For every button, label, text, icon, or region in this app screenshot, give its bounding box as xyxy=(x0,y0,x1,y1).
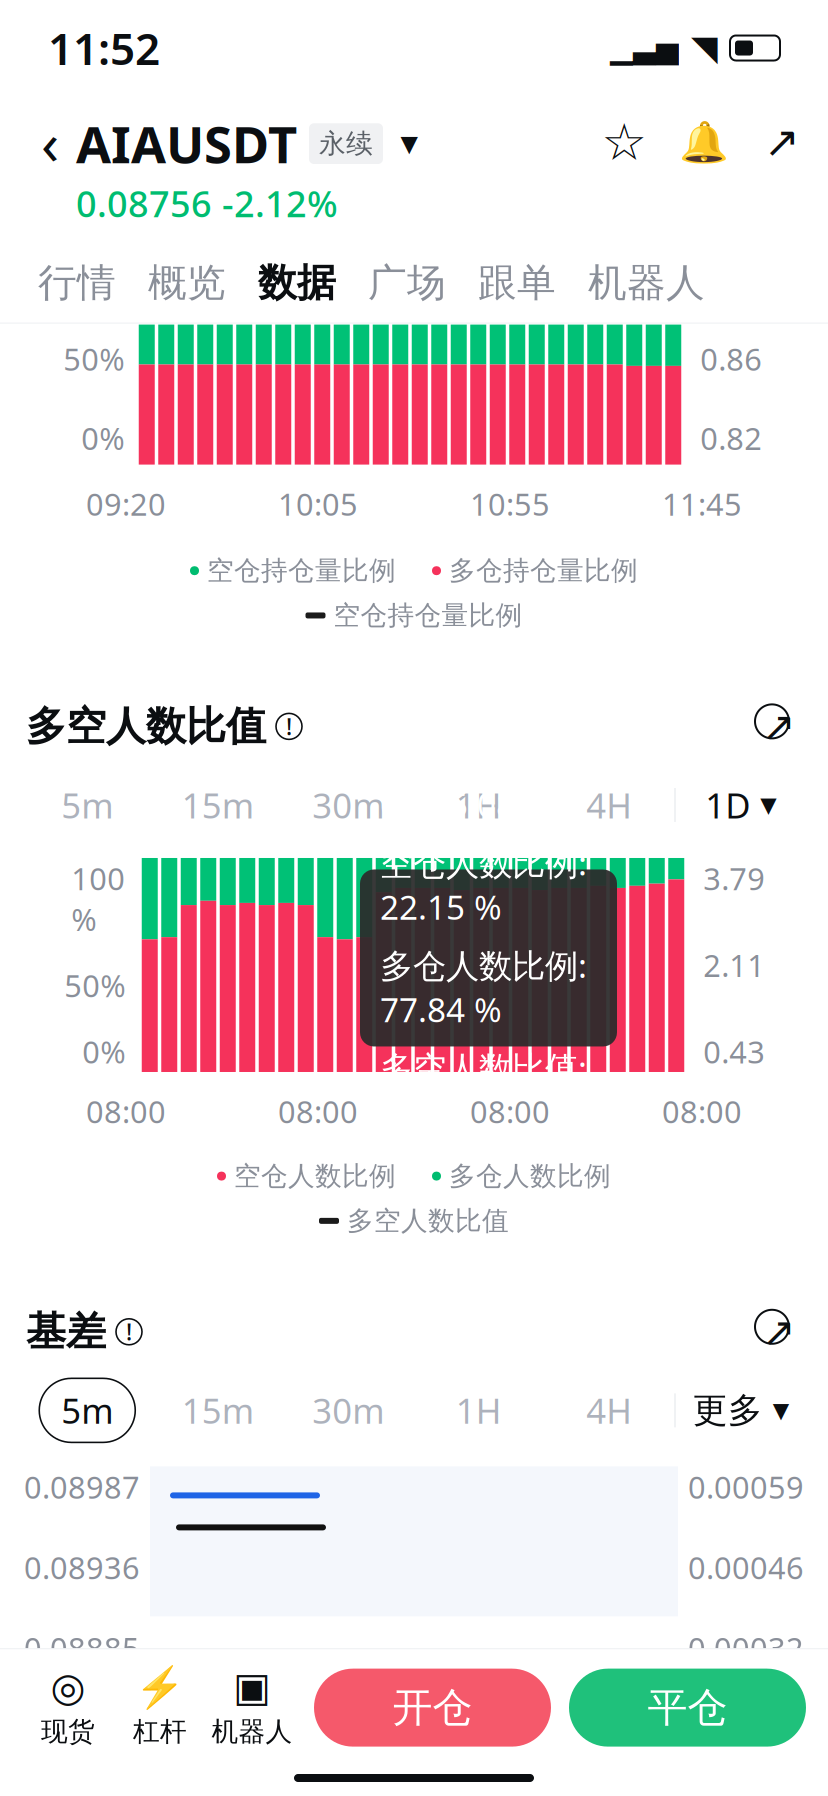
staticText: 1H xyxy=(456,782,502,828)
button[interactable]: 更多 xyxy=(675,1380,806,1441)
staticText: 多仓人数比例 xyxy=(449,1160,611,1192)
staticText: 15m xyxy=(182,782,254,828)
button[interactable]: ⚡ xyxy=(114,1667,206,1748)
staticText: ↗ xyxy=(764,118,800,166)
staticText: 08:00 xyxy=(470,1091,550,1132)
button[interactable]: 数据 xyxy=(242,249,352,317)
button[interactable]: 永续 xyxy=(309,123,383,164)
button[interactable]: Share xyxy=(760,116,804,168)
button[interactable]: 30m xyxy=(283,1378,413,1442)
staticText: 多仓持仓量比例 xyxy=(449,554,638,587)
staticText: 30m xyxy=(312,1387,384,1433)
staticText: ☆ xyxy=(601,113,646,171)
staticText: 08:00 xyxy=(86,1091,166,1132)
staticText: 09:20 xyxy=(86,484,166,524)
staticText: 数据 xyxy=(258,259,336,307)
button[interactable]: 基差 xyxy=(26,1307,142,1356)
button[interactable]: 1H xyxy=(413,773,544,837)
staticText: 多空人数比值 xyxy=(26,702,266,751)
staticText: 0.00032 xyxy=(688,1628,804,1668)
button[interactable]: 跟单 xyxy=(462,249,572,317)
staticText: 0.82 xyxy=(700,418,762,459)
button[interactable]: 平仓 xyxy=(569,1669,806,1747)
staticText: 10:55 xyxy=(470,484,550,524)
staticText: 空仓持仓量比例 xyxy=(333,599,522,632)
staticText: 空仓人数比例 xyxy=(234,1160,396,1192)
staticText: 0.43 xyxy=(703,1031,765,1072)
staticText: 3.79 xyxy=(703,858,765,899)
button[interactable]: Back xyxy=(24,110,76,174)
staticText: ! xyxy=(126,1317,132,1347)
button[interactable]: Favorite xyxy=(600,116,648,168)
button[interactable]: 概览 xyxy=(132,249,242,317)
staticText: 开仓 xyxy=(392,1683,472,1732)
staticText: 0.08756 xyxy=(76,179,212,227)
staticText: 04/15 08:00 xyxy=(380,782,562,826)
staticText: 10:05 xyxy=(278,484,358,524)
staticText: 概览 xyxy=(148,259,226,307)
staticText: 空仓人数比例: 22.15 % xyxy=(380,840,587,929)
staticText: 现货 xyxy=(41,1715,95,1748)
staticText: 0% xyxy=(82,1031,125,1072)
staticText: 1D xyxy=(705,782,750,828)
staticText: 08:00 xyxy=(662,1091,742,1132)
staticText: 11:52 xyxy=(48,19,160,77)
button[interactable]: ▣ xyxy=(206,1667,298,1748)
staticText: 50% xyxy=(64,965,125,1006)
staticText: 空仓持仓量比例 xyxy=(207,554,396,587)
staticText: ↗ xyxy=(762,704,796,749)
staticText: 多仓人数比例: 77.84 % xyxy=(380,943,587,1031)
staticText: 30m xyxy=(312,782,384,828)
staticText: 0.86 xyxy=(700,339,762,379)
staticText: 50% xyxy=(63,339,124,379)
button[interactable]: 机器人 xyxy=(572,249,721,317)
staticText: 永续 xyxy=(319,127,373,160)
staticText: ◎ xyxy=(50,1664,85,1710)
staticText: ▼ xyxy=(760,793,776,817)
button[interactable]: 1D xyxy=(675,773,806,837)
button[interactable]: Select contract xyxy=(395,130,423,158)
button[interactable]: 4H xyxy=(544,773,674,837)
button[interactable]: ◎ xyxy=(22,1667,114,1748)
staticText: 4H xyxy=(586,782,632,828)
staticText: 08:00 xyxy=(278,1091,358,1132)
button[interactable]: 多空人数比值 xyxy=(26,702,302,751)
staticText: 4H xyxy=(586,1387,632,1433)
button[interactable]: 15m xyxy=(152,773,283,837)
button[interactable]: Alerts xyxy=(682,116,726,168)
staticText: 🔔 xyxy=(679,119,729,165)
button[interactable]: 5m xyxy=(22,1378,152,1442)
staticText: 2.11 xyxy=(703,945,765,985)
staticText: 多空人数比值: 3.51 xyxy=(380,1045,587,1134)
staticText: 平仓 xyxy=(647,1683,727,1732)
staticText: ▁▃▅ xyxy=(610,31,679,65)
staticText: ▼ xyxy=(400,131,417,156)
staticText: 0.08885 xyxy=(24,1628,140,1668)
staticText: 机器人 xyxy=(211,1715,292,1748)
staticText: 更多 xyxy=(693,1389,763,1432)
staticText: ▣ xyxy=(233,1664,271,1710)
staticText: 基差 xyxy=(26,1307,106,1356)
staticText: 5m xyxy=(61,1387,113,1433)
staticText: 广场 xyxy=(368,259,446,307)
button[interactable]: 30m xyxy=(283,773,413,837)
staticText: 11:45 xyxy=(662,484,742,524)
button[interactable]: 5m xyxy=(22,773,152,837)
button[interactable]: 广场 xyxy=(352,249,462,317)
button[interactable]: 1H xyxy=(413,1378,544,1442)
button[interactable]: Share 基差 xyxy=(756,1309,802,1355)
button[interactable]: 15m xyxy=(152,1378,283,1442)
staticText: ⚡ xyxy=(135,1664,185,1710)
button[interactable]: 4H xyxy=(544,1378,674,1442)
staticText: 0% xyxy=(81,418,124,459)
staticText: 行情 xyxy=(38,259,116,307)
staticText: 15m xyxy=(182,1387,254,1433)
staticText: 多空人数比值 xyxy=(347,1204,509,1237)
button[interactable]: 开仓 xyxy=(314,1669,551,1747)
staticText: 1H xyxy=(456,1387,502,1433)
button[interactable]: 行情 xyxy=(22,249,132,317)
staticText: 0.00059 xyxy=(688,1466,804,1507)
button[interactable]: Share 多空人数比值 xyxy=(756,703,802,749)
staticText: ↗ xyxy=(762,1309,796,1354)
staticText: -2.12% xyxy=(222,179,338,227)
